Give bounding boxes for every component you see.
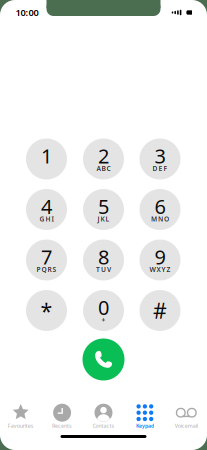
button[interactable]: 1	[26, 138, 67, 179]
button[interactable]: 0	[83, 290, 124, 331]
staticText: A B C	[96, 164, 110, 173]
staticText: Contacts	[92, 422, 114, 429]
staticText: 9	[154, 243, 165, 270]
staticText: P Q R S	[36, 265, 56, 274]
button[interactable]: Contacts	[83, 398, 124, 436]
staticText: D E F	[152, 164, 167, 173]
staticText: W X Y Z	[149, 265, 170, 274]
staticText: Keypad	[136, 422, 154, 429]
button[interactable]: Recents	[41, 398, 83, 436]
button[interactable]: Favourites	[0, 398, 41, 436]
staticText: 5	[98, 193, 109, 220]
staticText: 7	[41, 243, 52, 270]
staticText: 3	[154, 142, 165, 169]
button[interactable]: 4	[26, 189, 67, 230]
staticText: 2	[98, 142, 109, 169]
button[interactable]: 3	[139, 138, 180, 179]
staticText: *	[40, 296, 52, 325]
staticText: #	[153, 296, 167, 325]
staticText: +	[101, 316, 105, 324]
staticText: J K L	[97, 215, 109, 223]
staticText: G H I	[39, 215, 53, 223]
button[interactable]: 6	[139, 189, 180, 230]
button[interactable]: Call	[82, 338, 124, 380]
staticText: M N O	[151, 215, 169, 223]
staticText: 10:00	[15, 6, 38, 19]
staticText: Favourites	[8, 422, 34, 429]
button[interactable]: *	[26, 290, 67, 331]
staticText: Recents	[52, 422, 72, 429]
staticText: 0	[98, 294, 109, 321]
staticText: 6	[154, 193, 165, 220]
staticText: 8	[98, 243, 109, 270]
button[interactable]: 8	[83, 239, 124, 280]
button[interactable]: 2	[83, 138, 124, 179]
button[interactable]: 9	[139, 239, 180, 280]
button[interactable]: Keypad	[124, 398, 166, 436]
staticText: 1	[41, 142, 52, 169]
button[interactable]: 7	[26, 239, 67, 280]
staticText: 4	[41, 193, 52, 220]
button[interactable]: 5	[83, 189, 124, 230]
button[interactable]: Voicemail	[166, 398, 207, 436]
staticText: Voicemail	[175, 422, 198, 429]
button[interactable]: #	[139, 290, 180, 331]
staticText: T U V	[96, 265, 111, 274]
